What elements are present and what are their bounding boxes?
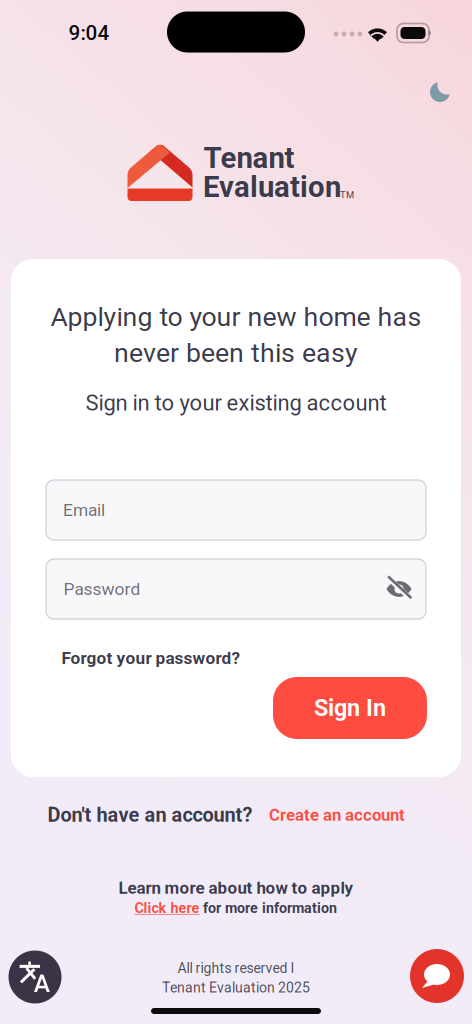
button[interactable]: Forgot your password? [58,643,243,673]
staticText: Forgot your password? [61,648,240,668]
button[interactable]: Sign In [273,677,427,739]
staticText: Tenant [203,141,294,175]
staticText: Email [63,500,105,520]
staticText: Sign In [314,694,386,722]
button[interactable]: Change language [8,950,61,1003]
staticText: Evaluation [203,170,341,204]
button[interactable]: Toggle dark mode [427,79,453,105]
staticText: TM [340,189,354,200]
staticText: Don't have an account? [47,803,252,827]
staticText: All rights reserved I [177,960,294,976]
staticText: Sign in to your existing account [85,390,386,416]
button[interactable]: Password [46,559,426,619]
staticText: for more information [203,900,337,916]
button[interactable]: Create an account [266,801,408,829]
staticText: Tenant Evaluation 2025 [162,979,310,996]
staticText: Password [63,579,140,599]
staticText: 9:04 [68,21,109,45]
staticText: Applying to your new home has [50,301,421,333]
staticText: never been this easy [114,337,358,369]
button[interactable]: Email [46,480,426,540]
staticText: Click here [134,900,199,916]
button[interactable]: Open support chat [410,949,464,1003]
staticText: Learn more about how to apply [118,878,353,898]
button[interactable]: Click here [134,900,199,916]
staticText: Create an account [269,805,405,825]
